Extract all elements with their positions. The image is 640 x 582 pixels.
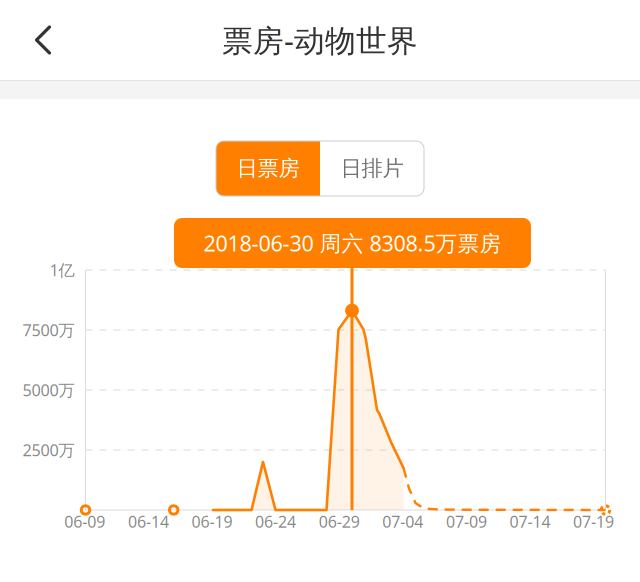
button[interactable]: 日排片 [320, 141, 424, 196]
staticText: 07-14 [509, 511, 550, 532]
staticText: 2018-06-30 周六 8308.5万票房 [203, 228, 501, 258]
staticText: 日票房 [236, 155, 299, 182]
staticText: 07-09 [446, 511, 487, 532]
staticText: 07-19 [573, 511, 614, 532]
staticText: 06-09 [64, 511, 105, 532]
staticText: 06-24 [255, 511, 296, 532]
staticText: 06-29 [319, 511, 360, 532]
button[interactable]: 日票房 [216, 141, 320, 196]
staticText: 06-14 [128, 511, 169, 532]
button[interactable]: Back [8, 5, 78, 75]
staticText: 7500万 [22, 319, 74, 341]
staticText: 票房-动物世界 [222, 19, 418, 61]
staticText: 2500万 [22, 439, 74, 461]
staticText: 06-19 [191, 511, 232, 532]
staticText: 07-04 [382, 511, 423, 532]
staticText: 1亿 [49, 259, 74, 281]
staticText: 5000万 [22, 379, 74, 401]
staticText: 日排片 [340, 155, 403, 182]
